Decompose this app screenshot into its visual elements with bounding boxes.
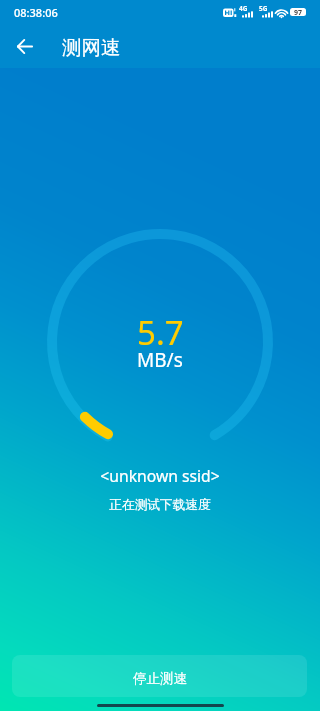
staticText: MB/s — [137, 347, 183, 373]
staticText: 97 — [294, 8, 303, 16]
staticText: 正在测试下载速度 — [0, 497, 320, 513]
staticText: 测网速 — [62, 35, 121, 60]
staticText: 5.7 — [137, 310, 184, 355]
staticText: 08:38:06 — [14, 5, 58, 20]
staticText: <unknown ssid> — [0, 465, 320, 486]
staticText: 停止测速 — [133, 670, 187, 687]
button[interactable]: Back — [3, 24, 47, 68]
staticText: 5G — [259, 4, 268, 13]
staticText: 4G — [239, 4, 248, 13]
button[interactable]: 停止测速 — [12, 655, 307, 697]
